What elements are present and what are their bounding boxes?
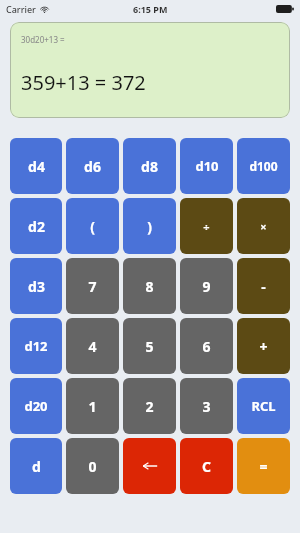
button[interactable]: d10	[180, 138, 233, 194]
button[interactable]: Backspace	[123, 438, 176, 494]
button[interactable]: -	[237, 258, 290, 314]
staticText: d4	[28, 157, 45, 176]
button[interactable]: d2	[10, 198, 62, 254]
staticText: =	[259, 457, 268, 476]
staticText: C	[202, 457, 211, 476]
staticText: 3	[202, 397, 211, 416]
button[interactable]: d3	[10, 258, 62, 314]
staticText: 6	[202, 337, 211, 356]
button[interactable]: =	[237, 438, 290, 494]
button[interactable]: d12	[10, 318, 62, 374]
staticText: 5	[145, 337, 154, 356]
button[interactable]: 7	[66, 258, 119, 314]
staticText: ×	[260, 219, 267, 234]
button[interactable]: 9	[180, 258, 233, 314]
button[interactable]: d100	[237, 138, 290, 194]
button[interactable]: ÷	[180, 198, 233, 254]
staticText: d8	[141, 157, 158, 176]
staticText: 2	[145, 397, 154, 416]
button[interactable]: d20	[10, 378, 62, 434]
button[interactable]: RCL	[237, 378, 290, 434]
button[interactable]: 1	[66, 378, 119, 434]
staticText: 0	[88, 457, 97, 476]
staticText: +	[259, 337, 268, 356]
button[interactable]: C	[180, 438, 233, 494]
button[interactable]: 4	[66, 318, 119, 374]
button[interactable]: ×	[237, 198, 290, 254]
staticText: 7	[88, 277, 97, 296]
staticText: d20	[24, 397, 48, 415]
button[interactable]: d6	[66, 138, 119, 194]
staticText: d2	[28, 217, 45, 236]
button[interactable]: 3	[180, 378, 233, 434]
staticText: d12	[24, 337, 48, 355]
button[interactable]: d4	[10, 138, 62, 194]
staticText: 9	[202, 277, 211, 296]
staticText: 359+13 = 372	[21, 69, 146, 96]
staticText: (	[90, 217, 95, 236]
button[interactable]: 2	[123, 378, 176, 434]
button[interactable]: 5	[123, 318, 176, 374]
staticText: -	[261, 277, 266, 296]
staticText: d6	[84, 157, 101, 176]
staticText: 6:15 PM	[133, 3, 168, 15]
staticText: d10	[195, 157, 219, 175]
staticText: d3	[28, 277, 45, 296]
button[interactable]: d	[10, 438, 62, 494]
button[interactable]: )	[123, 198, 176, 254]
button[interactable]: (	[66, 198, 119, 254]
staticText: 1	[88, 397, 97, 416]
button[interactable]: +	[237, 318, 290, 374]
staticText: d	[32, 457, 41, 476]
button[interactable]: 8	[123, 258, 176, 314]
staticText: RCL	[251, 397, 276, 415]
staticText: d100	[249, 158, 278, 174]
staticText: ÷	[203, 219, 210, 234]
button[interactable]: d8	[123, 138, 176, 194]
staticText: Carrier	[6, 3, 36, 15]
button[interactable]: 0	[66, 438, 119, 494]
staticText: 30d20+13 =	[21, 34, 65, 45]
staticText: 8	[145, 277, 154, 296]
staticText: )	[147, 217, 152, 236]
staticText: 4	[88, 337, 97, 356]
button[interactable]: 6	[180, 318, 233, 374]
